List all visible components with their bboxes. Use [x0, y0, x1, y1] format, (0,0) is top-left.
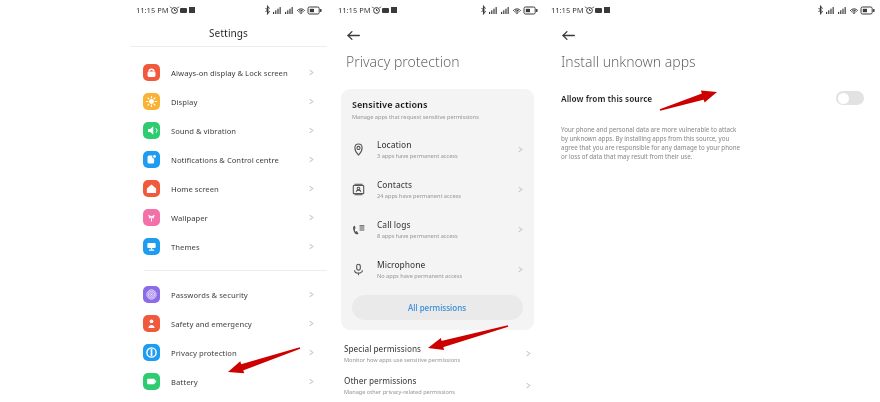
staticText: Sound & vibration — [171, 126, 309, 136]
button[interactable]: Back — [559, 26, 577, 44]
button[interactable]: Back — [344, 26, 362, 44]
staticText: Notifications & Control centre — [171, 155, 309, 165]
staticText: 11:15 PM — [551, 5, 584, 15]
button[interactable]: Home screen — [130, 174, 327, 203]
staticText: Privacy protection — [346, 52, 460, 71]
staticText: 8 apps have permanent access — [377, 232, 458, 240]
button[interactable]: Sound & vibration — [130, 116, 327, 145]
button[interactable]: Wallpaper — [130, 203, 327, 232]
staticText: Your phone and personal data are more vu… — [561, 125, 741, 161]
button[interactable]: Privacy protection — [130, 338, 327, 367]
staticText: Safety and emergency — [171, 319, 309, 329]
staticText: Install unknown apps — [561, 52, 696, 71]
button[interactable]: Other permissions — [332, 373, 543, 398]
staticText: Allow from this source — [561, 93, 836, 104]
staticText: Monitor how apps use sensitive permissio… — [344, 356, 461, 364]
button[interactable]: Safety and emergency — [130, 309, 327, 338]
staticText: Contacts — [377, 179, 413, 190]
staticText: Manage apps that request sensitive permi… — [352, 113, 479, 121]
staticText: Call logs — [377, 219, 411, 230]
staticText: 24 apps have permanent access — [377, 192, 461, 200]
staticText: Passwords & security — [171, 290, 309, 300]
staticText: All permissions — [408, 302, 467, 313]
staticText: Wallpaper — [171, 213, 309, 223]
staticText: 11:15 PM — [338, 5, 371, 15]
button[interactable]: Allow from this source — [545, 91, 880, 105]
button[interactable]: Battery — [130, 367, 327, 396]
staticText: Battery — [171, 377, 309, 387]
button[interactable]: Notifications & Control centre — [130, 145, 327, 174]
button[interactable]: Always-on display & Lock screen — [130, 58, 327, 87]
staticText: Microphone — [377, 259, 426, 270]
button[interactable]: All permissions — [352, 295, 523, 320]
staticText: Always-on display & Lock screen — [171, 68, 309, 78]
staticText: Other permissions — [344, 375, 417, 386]
staticText: Location — [377, 139, 412, 150]
button[interactable]: Location — [341, 129, 534, 169]
staticText: Settings — [209, 26, 248, 40]
staticText: 11:15 PM — [136, 5, 169, 15]
staticText: No apps have permanent access — [377, 272, 463, 280]
staticText: Manage other privacy-related permissions — [344, 388, 456, 396]
button[interactable]: Themes — [130, 232, 327, 261]
button[interactable]: Passwords & security — [130, 280, 327, 309]
staticText: Privacy protection — [171, 348, 309, 358]
staticText: Themes — [171, 242, 309, 252]
button[interactable]: Call logs — [341, 209, 534, 249]
button[interactable]: Microphone — [341, 249, 534, 289]
staticText: Special permissions — [344, 343, 422, 354]
staticText: Home screen — [171, 184, 309, 194]
button[interactable]: Contacts — [341, 169, 534, 209]
button[interactable]: Display — [130, 87, 327, 116]
staticText: Display — [171, 97, 309, 107]
staticText: Sensitive actions — [352, 98, 428, 110]
button[interactable]: Special permissions — [332, 341, 543, 366]
staticText: 3 apps have permanent access — [377, 152, 458, 160]
